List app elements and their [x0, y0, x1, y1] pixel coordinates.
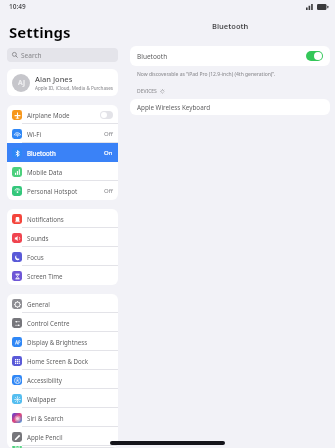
button[interactable]: Bluetooth — [7, 143, 118, 162]
staticText: Wallpaper — [27, 395, 113, 403]
staticText: Off — [104, 130, 113, 138]
staticText: Wi-Fi — [27, 130, 104, 138]
staticText: AJ — [18, 78, 25, 88]
staticText: Bluetooth — [212, 21, 249, 31]
button[interactable]: Mobile Data — [7, 162, 118, 181]
button[interactable]: Apple Wireless Keyboard — [130, 99, 330, 115]
staticText: Off — [104, 187, 113, 195]
button[interactable]: Home Screen & Dock — [7, 351, 118, 370]
staticText: Apple ID, iCloud, Media & Purchases — [35, 85, 113, 91]
staticText: Focus — [27, 253, 113, 261]
staticText: Bluetooth — [27, 149, 104, 157]
staticText: Settings — [9, 22, 71, 42]
staticText: On — [104, 149, 113, 157]
button[interactable]: AJ — [7, 69, 118, 96]
staticText: Sounds — [27, 234, 113, 242]
staticText: Search — [21, 51, 42, 60]
button[interactable]: Screen Time — [7, 266, 118, 285]
button[interactable]: Focus — [7, 247, 118, 266]
button[interactable]: Accessibility — [7, 370, 118, 389]
staticText: Now discoverable as “iPad Pro (12.9-inch… — [137, 71, 276, 78]
button[interactable]: General — [7, 294, 118, 313]
button[interactable]: Search — [7, 48, 118, 62]
staticText: Control Centre — [27, 319, 113, 327]
staticText: Apple Pencil — [27, 433, 113, 441]
staticText: Accessibility — [27, 376, 113, 384]
staticText: Notifications — [27, 215, 113, 223]
staticText: Mobile Data — [27, 168, 113, 176]
staticText: Airplane Mode — [27, 111, 100, 119]
other: Scanning — [160, 89, 165, 94]
button[interactable]: Personal Hotspot — [7, 181, 118, 200]
button[interactable]: Airplane Mode — [7, 105, 118, 124]
button[interactable]: Face ID & Passcode — [7, 446, 118, 448]
button[interactable]: Control Centre — [7, 313, 118, 332]
button[interactable]: Notifications — [7, 209, 118, 228]
button[interactable]: Display & Brightness — [7, 332, 118, 351]
staticText: General — [27, 300, 113, 308]
staticText: Personal Hotspot — [27, 187, 104, 195]
staticText: Display & Brightness — [27, 338, 113, 346]
staticText: Siri & Search — [27, 414, 113, 422]
button[interactable]: Sounds — [7, 228, 118, 247]
staticText: Bluetooth — [137, 52, 306, 61]
button[interactable]: Wi-Fi — [7, 124, 118, 143]
staticText: Alan Jones — [35, 74, 73, 84]
staticText: 10:49 — [9, 2, 26, 11]
staticText: DEVICES — [137, 88, 157, 95]
button[interactable]: Bluetooth — [130, 46, 330, 66]
staticText: Home Screen & Dock — [27, 357, 113, 365]
button[interactable]: Siri & Search — [7, 408, 118, 427]
staticText: Apple Wireless Keyboard — [137, 103, 211, 112]
staticText: Face ID & Passcode — [27, 446, 113, 448]
button[interactable]: Apple Pencil — [7, 427, 118, 446]
staticText: Screen Time — [27, 272, 113, 280]
button[interactable]: Wallpaper — [7, 389, 118, 408]
